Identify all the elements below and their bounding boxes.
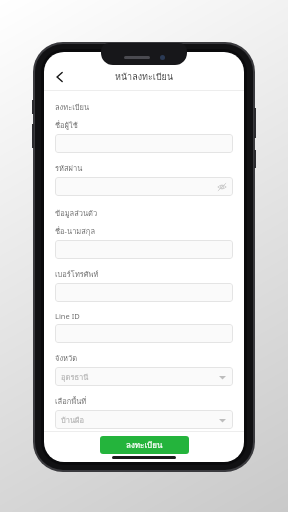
button[interactable] bbox=[55, 324, 233, 343]
staticText: รหัสผ่าน bbox=[55, 162, 83, 174]
staticText: ข้อมูลส่วนตัว bbox=[55, 207, 98, 219]
staticText: บ้านผือ bbox=[61, 414, 84, 426]
staticText: เบอร์โทรศัพท์ bbox=[55, 268, 99, 280]
staticText: ลงทะเบียน bbox=[126, 439, 163, 452]
button[interactable]: Show password bbox=[216, 181, 228, 193]
staticText: หน้าลงทะเบียน bbox=[115, 70, 174, 84]
button[interactable] bbox=[55, 240, 233, 259]
button[interactable]: Back bbox=[48, 65, 72, 89]
staticText: จังหวัด bbox=[55, 352, 78, 364]
staticText: เลือกพื้นที่ bbox=[55, 395, 87, 407]
button[interactable] bbox=[55, 134, 233, 153]
button[interactable]: ลงทะเบียน bbox=[100, 436, 189, 454]
staticText: Line ID bbox=[55, 311, 80, 321]
staticText: ชื่อผู้ใช้ bbox=[55, 119, 78, 131]
button[interactable]: Show password bbox=[55, 177, 233, 196]
button[interactable]: บ้านผือ bbox=[55, 410, 233, 429]
staticText: ลงทะเบียน bbox=[55, 101, 90, 113]
button[interactable]: Open dropdown bbox=[217, 372, 227, 382]
button[interactable]: Open dropdown bbox=[217, 415, 227, 425]
button[interactable] bbox=[55, 283, 233, 302]
button[interactable]: อุดรธานี bbox=[55, 367, 233, 386]
staticText: อุดรธานี bbox=[61, 371, 89, 383]
staticText: ชื่อ-นามสกุล bbox=[55, 225, 96, 237]
